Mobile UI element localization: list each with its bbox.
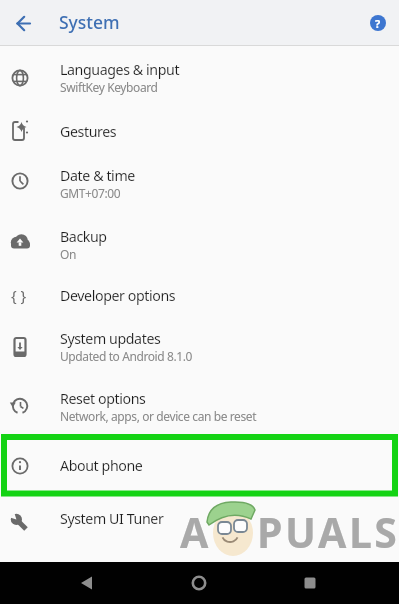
button[interactable] [75,571,99,595]
staticText: PUALS [257,504,399,560]
button[interactable]: System updates [0,318,399,374]
staticText: On [60,246,76,262]
button[interactable]: System UI Tuner [0,493,399,543]
staticText: Developer options [60,286,176,305]
staticText: System UI Tuner [60,509,164,528]
button[interactable]: Languages & input [0,47,399,107]
button[interactable] [187,571,211,595]
button[interactable]: About phone [0,437,399,493]
button[interactable]: Date & time [0,155,399,211]
button[interactable]: Reset options [0,378,399,434]
button[interactable]: Developer options [0,274,399,316]
staticText: GMT+07:00 [60,185,121,201]
button[interactable]: ? [368,13,388,33]
staticText: System updates [60,329,161,348]
staticText: SwiftKey Keyboard [60,79,158,95]
staticText: Gestures [60,122,117,141]
staticText: { } [11,285,27,305]
staticText: About phone [60,456,143,475]
staticText: System [59,10,120,34]
button[interactable]: Gestures [0,107,399,155]
staticText: A [180,504,209,560]
button[interactable] [11,11,35,35]
staticText: Backup [60,227,107,246]
staticText: Date & time [60,166,135,185]
staticText: Reset options [60,389,146,408]
button[interactable] [298,571,322,595]
staticText: Network, apps, or device can be reset [60,408,257,424]
staticText: Languages & input [60,60,180,79]
staticText: Updated to Android 8.1.0 [60,348,193,364]
button[interactable]: Backup [0,215,399,274]
staticText: ? [375,16,381,31]
